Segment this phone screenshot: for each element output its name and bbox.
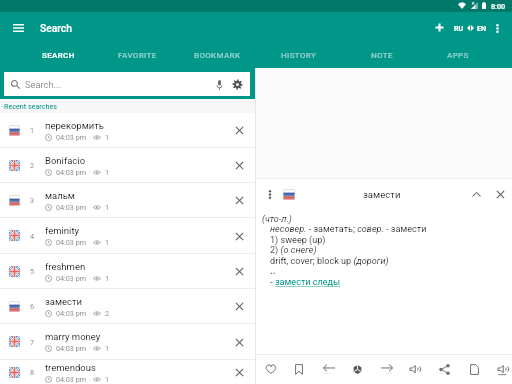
button[interactable]: Add to favourites — [259, 357, 283, 381]
staticText: 1 — [105, 133, 110, 141]
button[interactable]: Pronounce — [403, 357, 427, 381]
staticText: мальм — [45, 190, 75, 201]
staticText: 2) (о снеге) — [270, 245, 317, 256]
staticText: 2 — [105, 309, 110, 317]
button[interactable]: Next — [375, 357, 399, 381]
staticText: 1 — [105, 238, 110, 246]
button[interactable]: HISTORY — [271, 45, 327, 66]
button[interactable]: RU — [453, 20, 488, 36]
staticText: marry money — [45, 331, 101, 342]
staticText: 1 — [105, 168, 110, 176]
staticText: tremendous — [45, 362, 96, 373]
button[interactable]: 2 — [0, 148, 255, 182]
button[interactable]: Collapse — [468, 186, 484, 202]
button[interactable]: BOOKMARK — [184, 45, 251, 66]
button[interactable]: APPS — [437, 45, 479, 66]
staticText: APPS — [447, 51, 469, 60]
staticText: 1 — [105, 344, 110, 352]
button[interactable]: Navigation menu — [10, 20, 26, 36]
button[interactable]: Pronounce original — [491, 357, 512, 381]
staticText: 3 — [30, 196, 35, 204]
staticText: 2 — [30, 161, 35, 169]
staticText: 04:03 pm — [56, 168, 87, 176]
button[interactable]: Remove — [231, 228, 247, 244]
button[interactable]: FAVORITE — [108, 45, 167, 66]
staticText: SEARCH — [42, 51, 75, 60]
button[interactable]: Remove — [231, 298, 247, 314]
staticText: 04:03 pm — [56, 274, 87, 282]
button[interactable]: Search settings — [230, 77, 244, 91]
staticText: 04:03 pm — [56, 344, 87, 352]
button[interactable]: Remove — [231, 122, 247, 138]
staticText: freshmen — [45, 261, 86, 272]
staticText: .. — [270, 266, 276, 277]
staticText: 1 — [105, 203, 110, 211]
button[interactable]: Add — [431, 19, 448, 36]
staticText: Search... — [25, 79, 61, 90]
staticText: FAVORITE — [118, 51, 157, 60]
button[interactable]: Remove — [231, 263, 247, 279]
button[interactable]: Entry options — [263, 188, 276, 201]
staticText: 5 — [30, 267, 35, 275]
button[interactable]: Share — [432, 357, 456, 381]
staticText: Search — [40, 22, 72, 34]
staticText: 8:00 — [491, 2, 506, 10]
button[interactable]: 7 — [0, 324, 255, 359]
staticText: EN — [477, 24, 487, 32]
staticText: 1 — [30, 126, 35, 134]
button[interactable]: Copy — [462, 357, 486, 381]
staticText: NOTE — [371, 51, 393, 60]
staticText: 4 — [30, 232, 35, 240]
staticText: drift, cover; block up (дороги) — [270, 256, 389, 267]
button[interactable]: 8 — [0, 360, 255, 384]
staticText: 1) sweep (up) — [270, 235, 326, 246]
staticText: 04:03 pm — [56, 133, 87, 141]
staticText: 6 — [30, 302, 35, 310]
button[interactable]: SEARCH — [32, 45, 85, 66]
button[interactable]: Previous — [317, 357, 341, 381]
button[interactable]: Bookmark — [287, 357, 311, 381]
staticText: перекормить — [45, 120, 104, 131]
staticText: замести — [363, 189, 401, 200]
staticText: HISTORY — [281, 51, 317, 60]
button[interactable]: 6 — [0, 289, 255, 323]
button[interactable]: 4 — [0, 218, 255, 253]
staticText: 1 — [105, 375, 110, 383]
staticText: RU — [454, 24, 464, 32]
button[interactable]: Remove — [231, 334, 247, 350]
staticText: замести следы — [275, 277, 341, 288]
staticText: замести — [45, 296, 83, 307]
button[interactable]: Voice search — [213, 78, 226, 91]
staticText: несовер. - заметать; совер. - замести — [270, 224, 427, 235]
staticText: 1 — [105, 274, 110, 282]
staticText: 04:03 pm — [56, 238, 87, 246]
button[interactable]: Random word — [345, 357, 369, 381]
staticText: feminity — [45, 225, 80, 236]
staticText: Recent searches — [4, 102, 57, 110]
button[interactable]: 5 — [0, 254, 255, 288]
staticText: Bonifacio — [45, 155, 86, 166]
button[interactable]: замести следы — [275, 277, 341, 288]
staticText: BOOKMARK — [194, 51, 241, 60]
button[interactable]: Remove — [231, 192, 247, 208]
button[interactable]: Remove — [231, 364, 247, 380]
button[interactable]: Search... — [4, 72, 250, 96]
button[interactable]: Remove — [231, 157, 247, 173]
button[interactable]: More options — [490, 21, 504, 35]
button[interactable]: 1 — [0, 113, 255, 147]
staticText: (что-л.) — [262, 214, 292, 225]
staticText: 8 — [30, 368, 35, 376]
staticText: 04:03 pm — [56, 203, 87, 211]
staticText: - — [270, 277, 275, 288]
staticText: 7 — [30, 338, 35, 346]
staticText: 04:03 pm — [56, 375, 87, 383]
staticText: 04:03 pm — [56, 309, 87, 317]
button[interactable]: NOTE — [361, 45, 403, 66]
button[interactable]: 3 — [0, 183, 255, 217]
button[interactable]: Close — [492, 186, 508, 202]
